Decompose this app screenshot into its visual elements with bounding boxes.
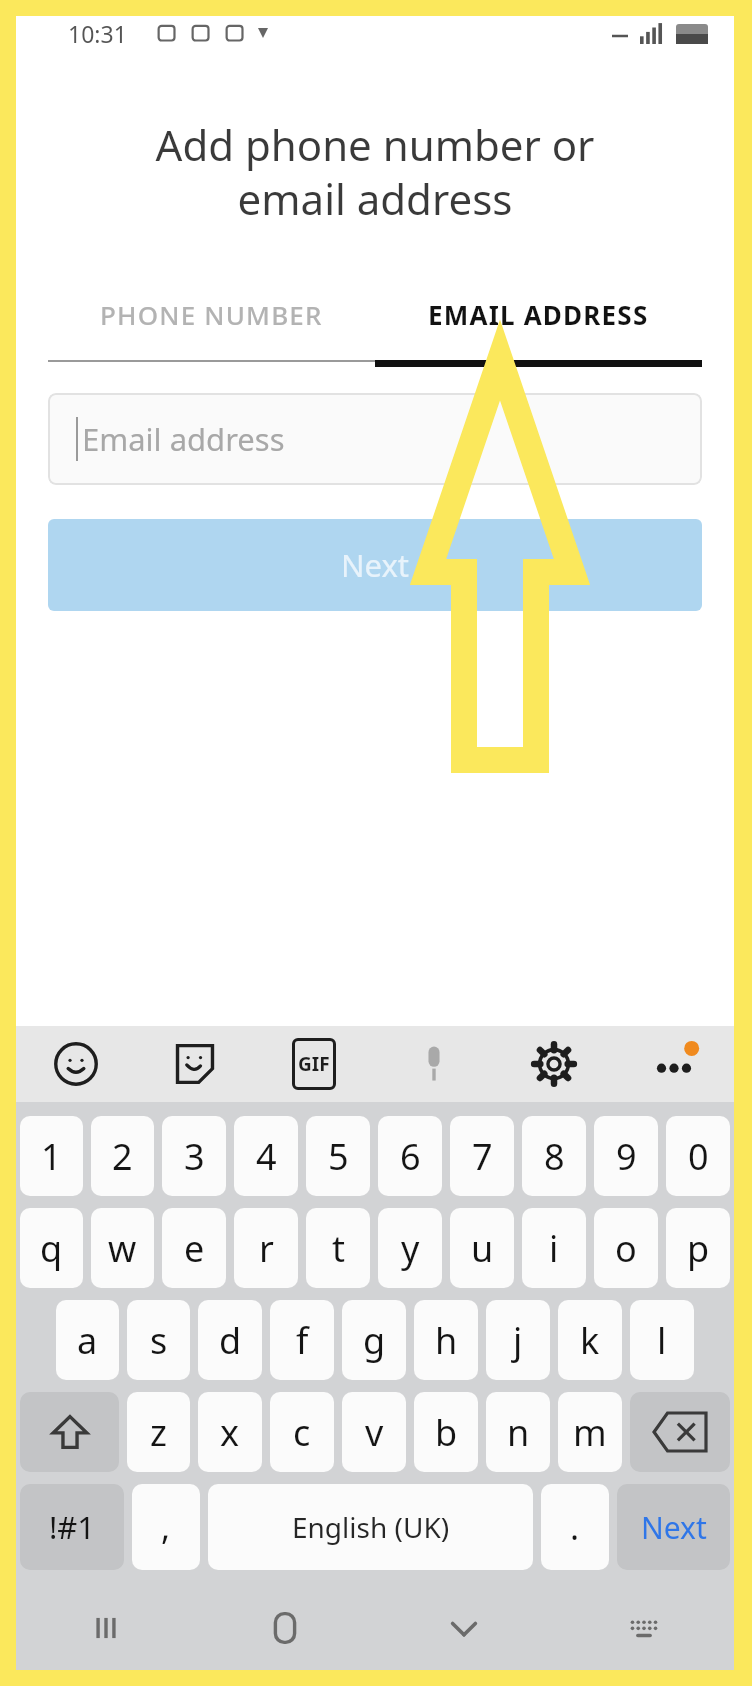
button[interactable]: , [132,1484,200,1570]
staticText: e [184,1224,205,1273]
staticText: 1 [41,1132,62,1181]
staticText: PHONE NUMBER [100,297,323,332]
button[interactable]: 4 [234,1116,298,1196]
button[interactable]: y [378,1208,442,1288]
button[interactable]: Home [195,1586,374,1670]
button[interactable]: g [342,1300,406,1380]
button[interactable]: Shift [20,1392,119,1472]
staticText: b [435,1408,458,1457]
button[interactable]: Change keyboard [554,1586,734,1670]
button[interactable]: r [234,1208,298,1288]
staticText: u [471,1224,494,1273]
staticText: 8 [544,1132,565,1181]
staticText: w [108,1224,137,1273]
staticText: 6 [400,1132,421,1181]
button[interactable]: 8 [522,1116,586,1196]
staticText: a [77,1316,98,1365]
button[interactable]: o [594,1208,658,1288]
button[interactable]: Settings [494,1026,614,1102]
button[interactable]: i [522,1208,586,1288]
button[interactable]: Email address [48,393,702,485]
staticText: h [435,1316,458,1365]
button[interactable]: x [198,1392,262,1472]
button[interactable]: 0 [666,1116,730,1196]
staticText: 7 [472,1132,493,1181]
staticText: c [293,1408,311,1457]
button[interactable]: 9 [594,1116,658,1196]
button[interactable]: b [414,1392,478,1472]
button[interactable]: a [56,1300,119,1380]
button[interactable]: English (UK) [208,1484,533,1570]
button[interactable]: GIF [254,1026,374,1102]
button[interactable]: v [342,1392,406,1472]
button[interactable]: s [127,1300,190,1380]
button[interactable]: t [306,1208,370,1288]
button[interactable]: Recents [16,1586,195,1670]
button[interactable]: Next [48,519,702,611]
staticText: 5 [328,1132,349,1181]
staticText: Add phone number or email address [40,116,710,228]
staticText: q [40,1224,63,1273]
button[interactable]: m [558,1392,622,1472]
staticText: t [332,1224,345,1273]
staticText: EMAIL ADDRESS [428,297,649,332]
button[interactable]: 3 [162,1116,226,1196]
staticText: 10:31 [68,18,127,49]
staticText: x [220,1408,240,1457]
button[interactable]: u [450,1208,514,1288]
staticText: , [161,1504,171,1550]
button[interactable]: f [270,1300,334,1380]
staticText: Email address [82,418,285,460]
staticText: o [615,1224,637,1273]
button[interactable]: e [162,1208,226,1288]
staticText: v [365,1408,384,1457]
staticText: j [513,1316,523,1365]
staticText: r [259,1224,274,1273]
staticText: f [296,1316,309,1365]
button[interactable]: 7 [450,1116,514,1196]
staticText: y [401,1224,420,1273]
staticText: 3 [184,1132,205,1181]
button[interactable]: c [270,1392,334,1472]
button[interactable]: !#1 [20,1484,124,1570]
button[interactable]: PHONE NUMBER [48,286,375,342]
button[interactable]: 1 [20,1116,83,1196]
staticText: . [570,1504,580,1550]
staticText: 0 [688,1132,709,1181]
staticText: 9 [616,1132,637,1181]
staticText: Next [641,1507,707,1548]
button[interactable]: d [198,1300,262,1380]
button[interactable]: w [91,1208,154,1288]
button[interactable]: q [20,1208,83,1288]
staticText: d [219,1316,242,1365]
staticText: z [150,1408,167,1457]
button[interactable]: h [414,1300,478,1380]
button[interactable]: 2 [91,1116,154,1196]
button[interactable]: Next [617,1484,730,1570]
button[interactable]: l [630,1300,694,1380]
button[interactable]: EMAIL ADDRESS [375,286,702,342]
button[interactable]: k [558,1300,622,1380]
button[interactable]: Emoji [16,1026,135,1102]
staticText: !#1 [49,1506,96,1548]
button[interactable]: z [127,1392,190,1472]
button[interactable]: Backspace [630,1392,730,1472]
staticText: GIF [298,1051,330,1077]
staticText: n [507,1408,530,1457]
button[interactable]: Stickers [135,1026,254,1102]
staticText: g [363,1316,386,1365]
button[interactable]: n [486,1392,550,1472]
button[interactable]: p [666,1208,730,1288]
staticText: English (UK) [292,1508,450,1546]
button[interactable]: 5 [306,1116,370,1196]
button[interactable]: More options [614,1026,734,1102]
button[interactable]: j [486,1300,550,1380]
staticText: 2 [112,1132,133,1181]
button[interactable]: 6 [378,1116,442,1196]
button[interactable]: . [541,1484,609,1570]
staticText: k [580,1316,600,1365]
staticText: p [687,1224,710,1273]
button[interactable]: Hide keyboard [374,1586,554,1670]
staticText: l [657,1316,667,1365]
button[interactable]: Voice input [374,1026,494,1102]
